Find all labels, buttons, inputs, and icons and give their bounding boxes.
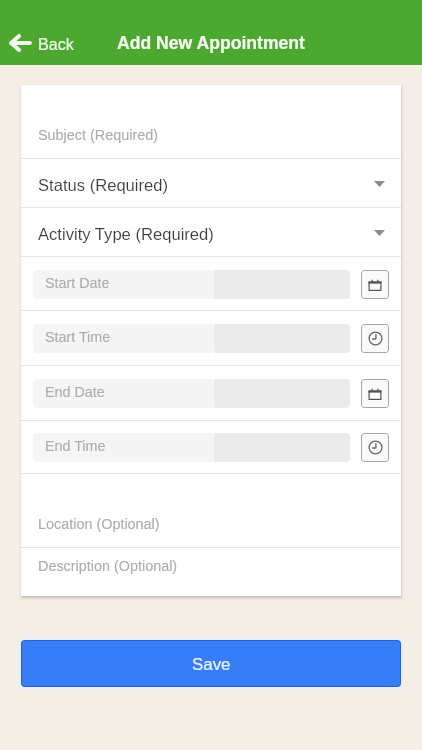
staticText: Description (Optional)	[38, 558, 178, 574]
button[interactable]: Description (Optional)	[21, 548, 401, 596]
button[interactable]: End Date	[33, 379, 350, 408]
button[interactable]: Back	[0, 27, 86, 59]
button[interactable]: Status (Required)	[21, 159, 401, 208]
staticText: Status (Required)	[38, 176, 374, 195]
staticText: End Date	[45, 384, 105, 400]
button[interactable]: Subject (Required)	[21, 85, 401, 159]
staticText: Start Time	[45, 329, 111, 345]
button[interactable]: Activity Type (Required)	[21, 208, 401, 257]
button[interactable]: Location (Optional)	[21, 474, 401, 548]
staticText: Save	[192, 655, 231, 674]
button[interactable]: Pick date	[361, 379, 389, 408]
staticText: Start Date	[45, 275, 110, 291]
button[interactable]: Pick time	[361, 433, 389, 462]
button[interactable]: Start Date	[33, 270, 350, 299]
staticText: Activity Type (Required)	[38, 225, 374, 244]
button[interactable]: End Time	[33, 433, 350, 462]
staticText: Back	[38, 35, 74, 53]
staticText: Subject (Required)	[38, 127, 158, 143]
button[interactable]: Start Time	[33, 324, 350, 353]
button[interactable]: Pick date	[361, 270, 389, 299]
button[interactable]: Save	[22, 641, 400, 686]
other: Back	[9, 34, 31, 52]
staticText: Add New Appointment	[117, 33, 305, 53]
staticText: End Time	[45, 438, 106, 454]
button[interactable]: Pick time	[361, 324, 389, 353]
staticText: Location (Optional)	[38, 516, 160, 532]
